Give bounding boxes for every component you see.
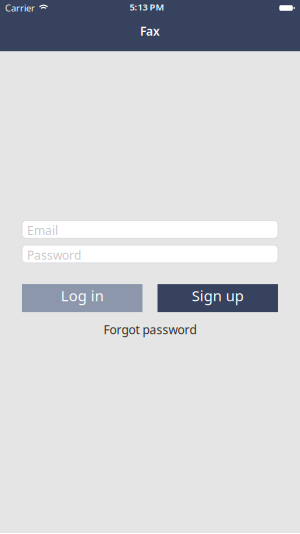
staticText: Password <box>27 247 81 263</box>
staticText: Email <box>27 222 58 238</box>
staticText: Fax <box>140 23 160 39</box>
staticText: Sign up <box>192 286 244 305</box>
staticText: 5:13 PM <box>129 1 164 13</box>
staticText: Forgot password <box>103 322 196 337</box>
button[interactable]: Password text field <box>22 245 278 263</box>
button[interactable]: Forgot password <box>103 322 196 337</box>
button[interactable]: Sign up <box>157 284 278 312</box>
button[interactable]: Log in <box>22 284 142 312</box>
button[interactable]: Email text field <box>22 220 278 238</box>
staticText: Log in <box>61 286 104 305</box>
staticText: Carrier <box>5 2 35 14</box>
